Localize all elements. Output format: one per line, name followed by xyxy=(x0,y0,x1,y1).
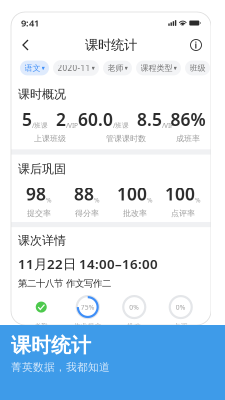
button[interactable]: 2020-11 xyxy=(53,60,99,76)
staticText: 2020-11 xyxy=(57,63,90,73)
button[interactable]: 老师 xyxy=(103,61,132,75)
staticText: 课时统计 xyxy=(11,333,91,358)
button[interactable]: Info xyxy=(187,36,205,54)
staticText: /VIP xyxy=(162,121,174,130)
staticText: 98 xyxy=(26,182,46,205)
staticText: /VIP xyxy=(66,121,78,130)
staticText: 100 xyxy=(117,182,147,205)
staticText: 老师 xyxy=(107,63,123,73)
staticText: 菁英数据，我都知道 xyxy=(11,361,110,374)
staticText: 100 xyxy=(165,182,195,205)
staticText: 批改率 xyxy=(123,208,147,218)
staticText: 课次详情 xyxy=(18,233,66,248)
staticText: 5 xyxy=(22,108,32,131)
button[interactable]: 课程类型 xyxy=(136,61,181,75)
staticText: /班课 xyxy=(32,121,48,130)
staticText: 86% xyxy=(170,108,205,131)
button[interactable]: Back xyxy=(17,36,35,54)
staticText: 9:41 xyxy=(21,17,39,29)
staticText: 课时概况 xyxy=(18,87,66,102)
staticText: 88 xyxy=(74,182,94,205)
staticText: 上课班级 xyxy=(34,134,66,144)
staticText: 管课课时数 xyxy=(106,134,146,144)
staticText: 课程类型 xyxy=(140,63,172,73)
button[interactable]: 班级 xyxy=(185,61,210,75)
staticText: 点评 xyxy=(174,322,188,330)
staticText: 课后巩固 xyxy=(18,162,66,176)
staticText: 0% xyxy=(129,303,139,311)
staticText: 11月22日 14:00–16:00 xyxy=(18,255,158,273)
staticText: 班级 xyxy=(189,63,205,73)
staticText: 2 xyxy=(56,108,66,131)
staticText: 作业提交 xyxy=(74,322,102,330)
staticText: % xyxy=(46,195,52,204)
staticText: 8.5 xyxy=(137,108,162,131)
staticText: % xyxy=(147,195,153,204)
staticText: 成班率 xyxy=(176,134,200,144)
staticText: 0% xyxy=(176,303,186,311)
staticText: 60.0 xyxy=(78,108,113,131)
staticText: ▾ xyxy=(41,64,44,72)
staticText: 考勤 xyxy=(34,322,48,330)
staticText: 点评率 xyxy=(171,208,195,218)
staticText: /班课 xyxy=(113,121,129,130)
staticText: % xyxy=(195,195,201,204)
staticText: 课时统计 xyxy=(85,37,137,53)
staticText: % xyxy=(94,195,100,204)
staticText: ▾ xyxy=(124,64,127,72)
button[interactable]: 语文 xyxy=(20,61,49,75)
staticText: ▾ xyxy=(91,64,94,72)
staticText: 提交率 xyxy=(27,208,51,218)
staticText: 75% xyxy=(81,303,95,311)
staticText: i xyxy=(194,39,197,51)
staticText: 第二十八节 作文写作二 xyxy=(18,278,111,289)
staticText: 批改 xyxy=(127,322,141,330)
staticText: ▾ xyxy=(173,64,176,72)
staticText: 得分率 xyxy=(75,208,99,218)
staticText: 语文 xyxy=(24,63,40,73)
